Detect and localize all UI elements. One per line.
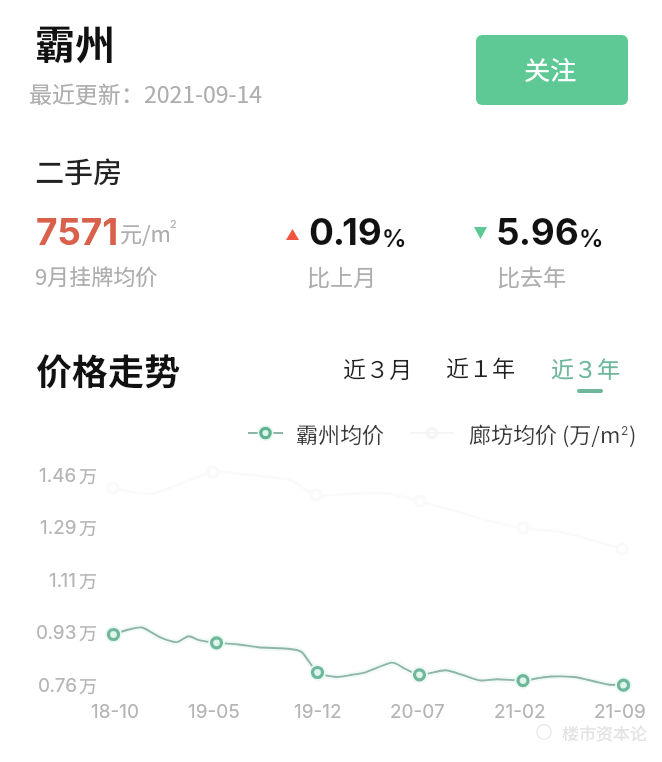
staticText: 万 — [79, 619, 97, 645]
staticText: 廊坊均价 (万/m — [469, 417, 621, 449]
staticText: 霸州均价 — [296, 417, 385, 449]
staticText: ) — [629, 417, 637, 449]
staticText: 万 — [79, 462, 97, 488]
staticText: 近１年 — [446, 350, 515, 383]
staticText: 近３年 — [551, 351, 620, 384]
staticText: 19-05 — [188, 700, 240, 723]
staticText: 近３月 — [343, 351, 412, 384]
staticText: 二手房 — [35, 149, 123, 191]
button[interactable]: 近３月 — [343, 351, 412, 384]
staticText: 元/m — [120, 216, 171, 248]
staticText: 比去年 — [497, 259, 566, 292]
staticText: 万 — [79, 567, 97, 593]
staticText: 价格走势 — [36, 343, 181, 395]
staticText: 5.96 — [496, 209, 579, 254]
staticText: 1.29 — [40, 516, 77, 539]
staticText: 1.11 — [49, 569, 77, 592]
staticText: 9月挂牌均价 — [35, 259, 158, 291]
staticText: 万 — [79, 672, 97, 698]
staticText: 20-07 — [390, 700, 445, 723]
staticText: 1.46 — [39, 464, 77, 487]
staticText: 21-02 — [494, 700, 546, 723]
staticText: 19-12 — [294, 700, 342, 723]
staticText: 0.93 — [36, 621, 77, 644]
staticText: 比上月 — [307, 259, 376, 292]
button[interactable]: 近１年 — [446, 350, 515, 383]
staticText: 霸州 — [35, 13, 115, 71]
staticText: 最近更新：2021-09-14 — [29, 76, 263, 109]
staticText: % — [579, 224, 604, 253]
staticText: 0.76 — [38, 674, 77, 697]
staticText: 7571 — [36, 209, 119, 254]
staticText: 楼市资本论 — [562, 720, 647, 745]
staticText: 21-09 — [594, 700, 646, 723]
staticText: 2 — [170, 217, 177, 230]
staticText: 万 — [79, 514, 97, 540]
staticText: 2 — [621, 423, 629, 438]
button[interactable]: 近３年 — [551, 351, 623, 395]
staticText: % — [382, 224, 407, 253]
staticText: 0.19 — [309, 209, 382, 254]
staticText: 18-10 — [91, 700, 139, 723]
button[interactable]: 关注 — [476, 35, 628, 105]
staticText: 关注 — [524, 50, 577, 88]
